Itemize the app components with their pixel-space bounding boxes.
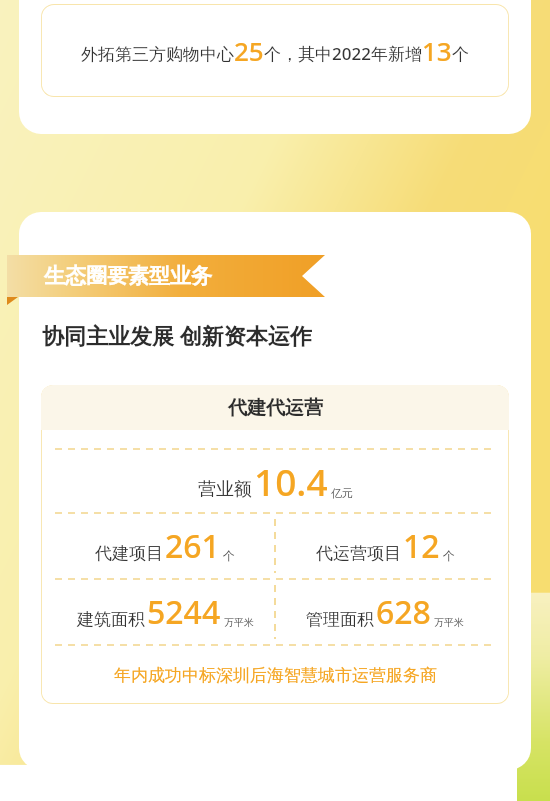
staticText: 协同主业发展 创新资本运作	[42, 320, 312, 350]
staticText: 万平米	[434, 616, 464, 629]
staticText: 5244	[147, 590, 221, 634]
staticText: 25	[234, 33, 264, 68]
staticText: 个	[443, 548, 455, 563]
staticText: 13	[422, 33, 452, 68]
staticText: 万平米	[224, 616, 254, 629]
staticText: 10.4	[254, 456, 328, 506]
staticText: 代建代运营	[228, 396, 323, 420]
staticText: 代建项目	[95, 543, 163, 564]
staticText: 个	[223, 548, 235, 563]
staticText: 261	[165, 524, 220, 568]
staticText: 628	[376, 590, 431, 634]
staticText: 营业额	[198, 478, 252, 501]
staticText: 管理面积	[306, 609, 374, 630]
staticText: 外拓第三方购物中心	[81, 44, 234, 65]
staticText: 个	[452, 44, 469, 65]
staticText: 12	[403, 524, 440, 568]
staticText: 代运营项目	[316, 543, 401, 564]
button[interactable]: 代建代运营	[41, 385, 509, 704]
staticText: 生态圈要素型业务	[44, 263, 212, 289]
staticText: 建筑面积	[77, 609, 145, 630]
staticText: 亿元	[331, 486, 353, 500]
button[interactable]: 外拓第三方购物中心	[41, 4, 509, 97]
staticText: 个，其中2022年新增	[264, 42, 422, 65]
staticText: 年内成功中标深圳后海智慧城市运营服务商	[114, 665, 437, 686]
